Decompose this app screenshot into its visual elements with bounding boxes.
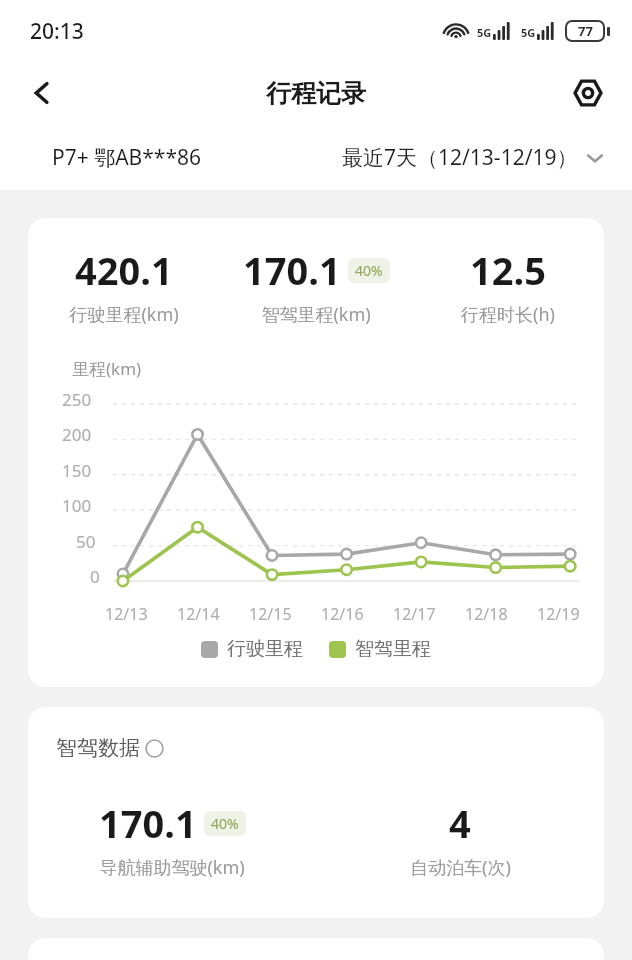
- staticText: 150: [62, 459, 92, 482]
- staticText: P7+ 鄂AB***86: [52, 143, 201, 172]
- staticText: 200: [62, 423, 92, 446]
- staticText: 行程时长(h): [461, 302, 555, 327]
- staticText: 行驶里程(km): [69, 302, 179, 327]
- staticText: 12/15: [249, 603, 292, 625]
- staticText: 智驾里程(km): [261, 302, 371, 327]
- staticText: 12/18: [465, 603, 508, 625]
- staticText: 12/14: [177, 603, 220, 625]
- button[interactable]: P7+ 鄂AB***86: [52, 143, 201, 172]
- button[interactable]: 行驶里程: [201, 637, 303, 661]
- staticText: 4: [449, 797, 471, 849]
- button[interactable]: Back: [16, 67, 68, 119]
- staticText: 40%: [211, 814, 239, 833]
- staticText: 100: [62, 494, 92, 517]
- staticText: 5G: [521, 25, 536, 40]
- staticText: 420.1: [75, 244, 173, 296]
- staticText: 0: [90, 565, 100, 588]
- button[interactable]: Settings: [562, 67, 614, 119]
- button[interactable]: 最近7天（12/13-12/19）: [342, 143, 604, 172]
- button[interactable]: 智驾数据: [56, 735, 164, 761]
- staticText: 12/13: [105, 603, 148, 625]
- staticText: 12.5: [470, 244, 546, 296]
- staticText: 自动泊车(次): [410, 855, 511, 880]
- staticText: 行程记录: [266, 78, 366, 109]
- button[interactable]: 170.1: [28, 797, 316, 880]
- staticText: 12/16: [321, 603, 364, 625]
- staticText: 12/19: [537, 603, 580, 625]
- staticText: 170.1: [243, 244, 341, 296]
- staticText: 5G: [477, 25, 492, 40]
- staticText: 12/17: [393, 603, 436, 625]
- staticText: 170.1: [99, 797, 197, 849]
- staticText: 77: [578, 22, 593, 40]
- staticText: 行驶里程: [227, 637, 303, 661]
- button[interactable]: 4: [316, 797, 604, 880]
- staticText: 智驾数据: [56, 735, 140, 761]
- button[interactable]: 420.1: [28, 244, 220, 327]
- button[interactable]: 智驾里程: [329, 637, 431, 661]
- staticText: 20:13: [30, 17, 84, 46]
- button[interactable]: 12.5: [412, 244, 604, 327]
- staticText: 智驾里程: [355, 637, 431, 661]
- staticText: 40%: [355, 261, 383, 280]
- staticText: 250: [62, 388, 92, 411]
- button[interactable]: 170.1: [220, 244, 412, 327]
- staticText: 导航辅助驾驶(km): [99, 855, 245, 880]
- staticText: 50: [76, 530, 96, 553]
- staticText: 里程(km): [72, 357, 142, 380]
- staticText: 最近7天（12/13-12/19）: [342, 143, 578, 172]
